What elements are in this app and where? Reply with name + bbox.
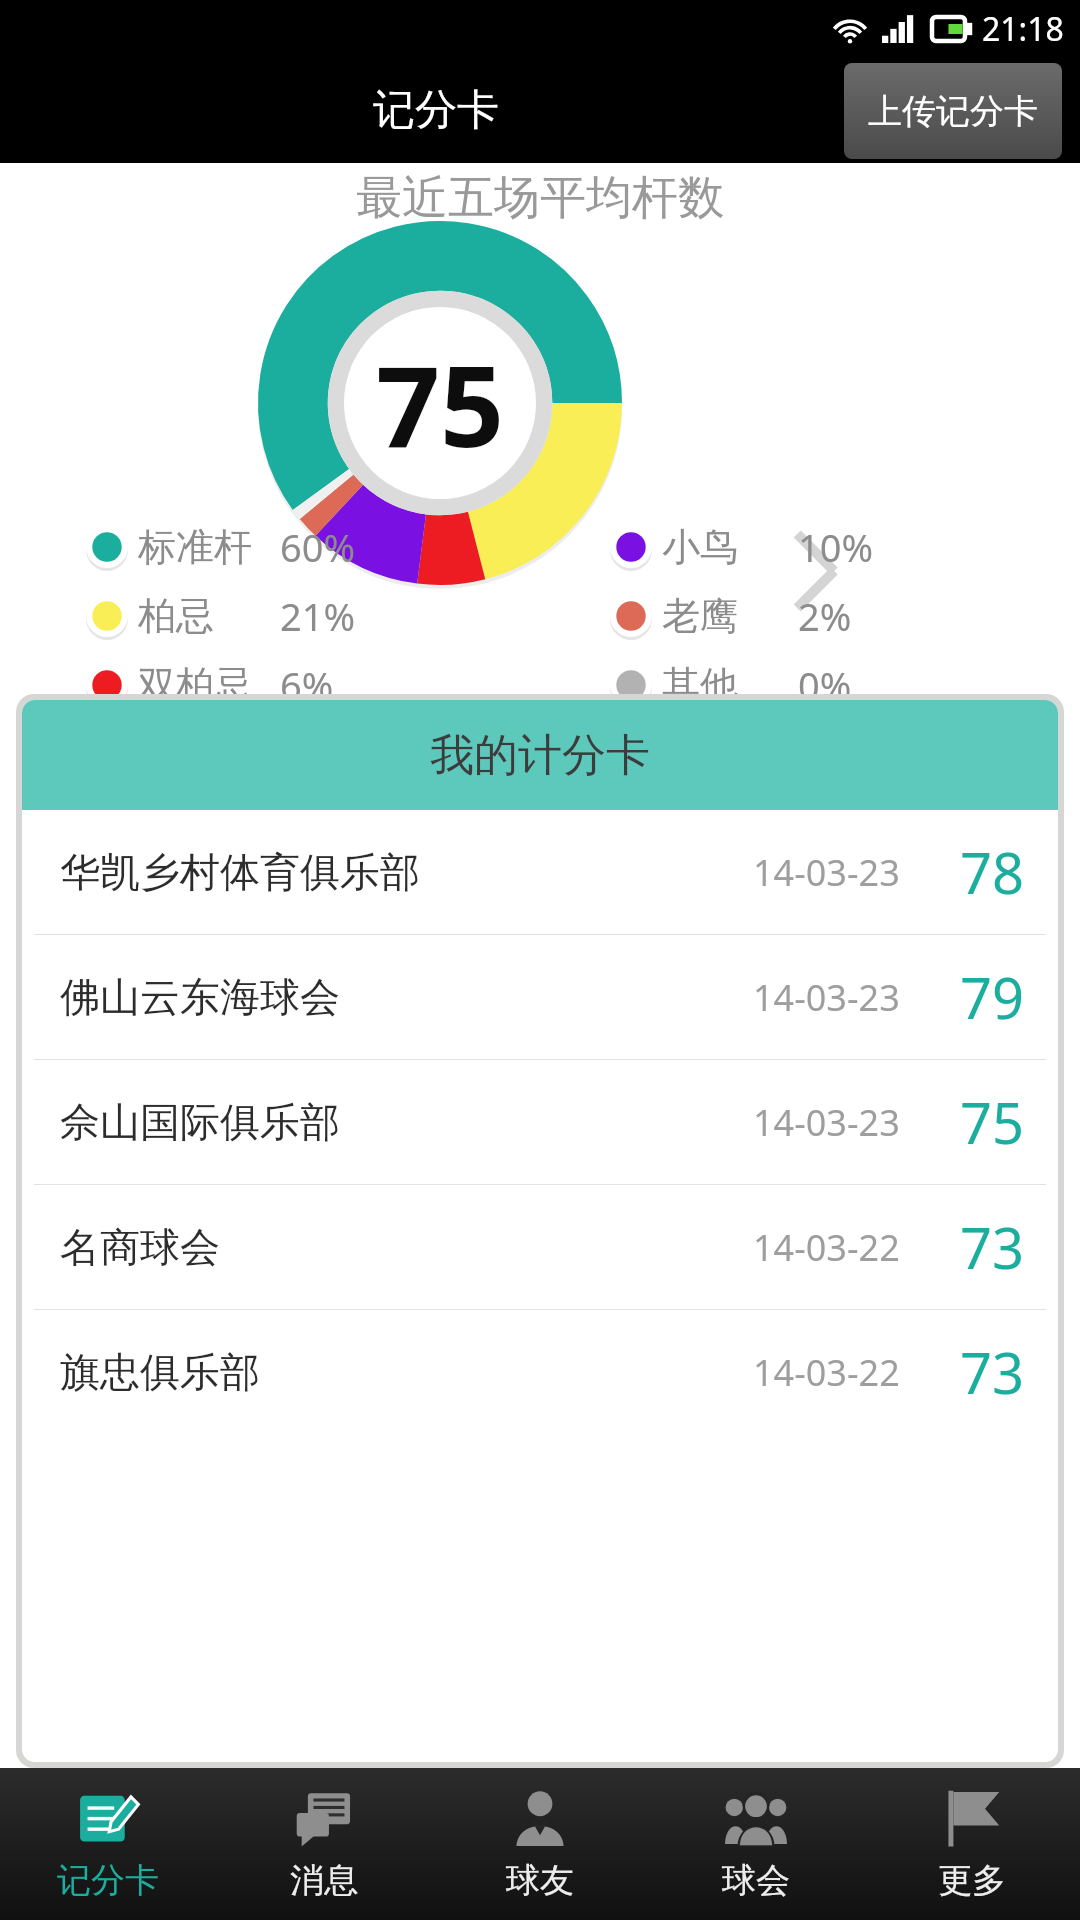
staticText: 旗忠俱乐部 bbox=[60, 1347, 260, 1397]
staticText: 73 bbox=[960, 1209, 1025, 1285]
button[interactable]: 更多 bbox=[864, 1768, 1080, 1920]
staticText: 佛山云东海球会 bbox=[60, 972, 340, 1022]
staticText: 记分卡 bbox=[373, 84, 499, 137]
staticText: 球友 bbox=[506, 1859, 574, 1902]
staticText: 柏忌 bbox=[138, 592, 214, 640]
staticText: 0% bbox=[798, 659, 852, 711]
staticText: 14-03-22 bbox=[753, 1223, 900, 1272]
button[interactable]: 旗忠俱乐部 bbox=[22, 1310, 1058, 1434]
staticText: 消息 bbox=[290, 1859, 358, 1902]
staticText: 14-03-22 bbox=[753, 1348, 900, 1397]
button[interactable]: 佘山国际俱乐部 bbox=[22, 1060, 1058, 1184]
button[interactable]: 记分卡 bbox=[0, 1768, 216, 1920]
staticText: 75 bbox=[376, 327, 505, 480]
staticText: 14-03-23 bbox=[753, 1098, 900, 1147]
button[interactable]: 我的计分卡 bbox=[22, 700, 1058, 810]
staticText: 上传记分卡 bbox=[868, 90, 1038, 133]
staticText: 我的计分卡 bbox=[430, 728, 650, 783]
staticText: 其他 bbox=[662, 661, 738, 709]
button[interactable]: Next chart bbox=[772, 515, 856, 627]
staticText: 最近五场平均杆数 bbox=[356, 169, 724, 227]
button[interactable]: 佛山云东海球会 bbox=[22, 935, 1058, 1059]
staticText: 小鸟 bbox=[662, 523, 738, 571]
button[interactable]: 球友 bbox=[432, 1768, 648, 1920]
button[interactable]: 华凯乡村体育俱乐部 bbox=[22, 810, 1058, 934]
staticText: 21:18 bbox=[982, 7, 1064, 51]
staticText: 老鹰 bbox=[662, 592, 738, 640]
staticText: 名商球会 bbox=[60, 1222, 220, 1272]
staticText: 10% bbox=[798, 521, 874, 573]
staticText: 标准杆 bbox=[138, 523, 252, 571]
staticText: 21% bbox=[280, 590, 356, 642]
staticText: 78 bbox=[960, 834, 1025, 910]
staticText: 6% bbox=[280, 659, 334, 711]
staticText: 华凯乡村体育俱乐部 bbox=[60, 847, 420, 897]
staticText: 79 bbox=[960, 959, 1025, 1035]
button[interactable]: 名商球会 bbox=[22, 1185, 1058, 1309]
staticText: 双柏忌 bbox=[138, 661, 252, 709]
staticText: 60% bbox=[280, 521, 356, 573]
staticText: 佘山国际俱乐部 bbox=[60, 1097, 340, 1147]
staticText: 14-03-23 bbox=[753, 973, 900, 1022]
button[interactable]: 上传记分卡 bbox=[844, 63, 1062, 159]
staticText: 14-03-23 bbox=[753, 848, 900, 897]
button[interactable]: 消息 bbox=[216, 1768, 432, 1920]
button[interactable]: 球会 bbox=[648, 1768, 864, 1920]
staticText: 73 bbox=[960, 1334, 1025, 1410]
staticText: 75 bbox=[960, 1084, 1025, 1160]
staticText: 记分卡 bbox=[57, 1859, 159, 1902]
staticText: 2% bbox=[798, 590, 852, 642]
staticText: 更多 bbox=[938, 1859, 1006, 1902]
staticText: 球会 bbox=[722, 1859, 790, 1902]
